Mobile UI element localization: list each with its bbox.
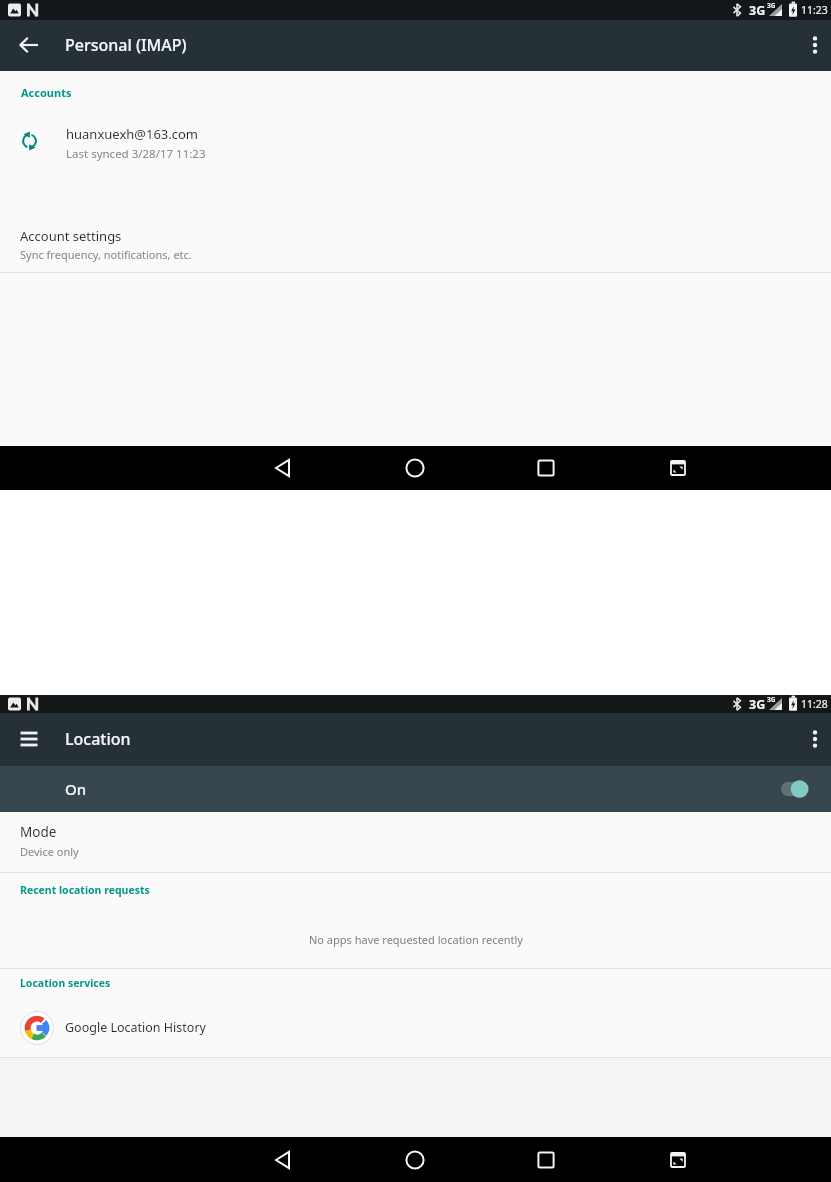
staticText: Personal (IMAP): [65, 34, 187, 56]
staticText: Location services: [20, 976, 111, 990]
staticText: 3G: [767, 1, 776, 10]
staticText: Recent location requests: [20, 883, 150, 897]
button[interactable]: huanxuexh@163.com: [0, 112, 831, 174]
button[interactable]: [391, 446, 439, 490]
button[interactable]: [522, 1137, 570, 1182]
button[interactable]: Google Location History: [0, 1003, 831, 1053]
staticText: 3G: [749, 2, 766, 19]
staticText: Device only: [20, 844, 79, 859]
staticText: Sync frequency, notifications, etc.: [20, 247, 192, 262]
staticText: 11:28: [801, 697, 828, 711]
button[interactable]: [787, 25, 827, 65]
button[interactable]: On: [0, 766, 831, 812]
button[interactable]: Account settings: [0, 218, 831, 272]
staticText: huanxuexh@163.com: [66, 125, 199, 143]
button[interactable]: [260, 1137, 308, 1182]
staticText: 3G: [767, 695, 776, 704]
staticText: No apps have requested location recently: [309, 932, 523, 947]
button[interactable]: [654, 1137, 702, 1182]
button[interactable]: [654, 446, 702, 490]
staticText: 3G: [749, 696, 766, 713]
button[interactable]: [260, 446, 308, 490]
staticText: Location: [65, 728, 131, 750]
button[interactable]: [9, 719, 49, 759]
staticText: Last synced 3/28/17 11:23: [66, 146, 206, 162]
button[interactable]: [522, 446, 570, 490]
staticText: Google Location History: [65, 1019, 206, 1036]
button[interactable]: [9, 25, 49, 65]
staticText: Accounts: [21, 85, 72, 100]
button[interactable]: Mode: [0, 813, 831, 869]
button[interactable]: [787, 719, 827, 759]
staticText: Account settings: [20, 227, 122, 245]
button[interactable]: [391, 1137, 439, 1182]
staticText: On: [65, 779, 87, 799]
staticText: Mode: [20, 823, 57, 841]
staticText: 11:23: [801, 3, 828, 17]
